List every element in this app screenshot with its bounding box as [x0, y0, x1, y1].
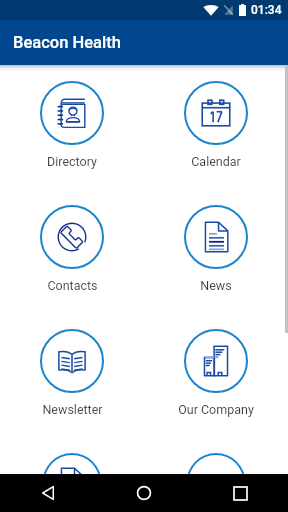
button[interactable]: Calendar: [144, 65, 288, 189]
button[interactable]: Newsletter: [0, 313, 144, 437]
button[interactable]: Recent apps: [192, 474, 288, 512]
button[interactable]: [144, 437, 288, 512]
staticText: Directory: [47, 154, 97, 169]
staticText: Beacon Health: [13, 33, 121, 52]
button[interactable]: Our Company: [144, 313, 288, 437]
button[interactable]: Directory: [0, 65, 144, 189]
button[interactable]: Back: [0, 474, 96, 512]
button[interactable]: Home: [96, 474, 192, 512]
staticText: 01:34: [251, 3, 282, 17]
button[interactable]: Contacts: [0, 189, 144, 313]
button[interactable]: News: [144, 189, 288, 313]
button[interactable]: [0, 437, 144, 512]
staticText: Our Company: [178, 402, 254, 417]
staticText: Calendar: [191, 154, 241, 169]
staticText: Contacts: [47, 278, 98, 293]
staticText: News: [200, 278, 232, 293]
staticText: Newsletter: [42, 402, 103, 417]
